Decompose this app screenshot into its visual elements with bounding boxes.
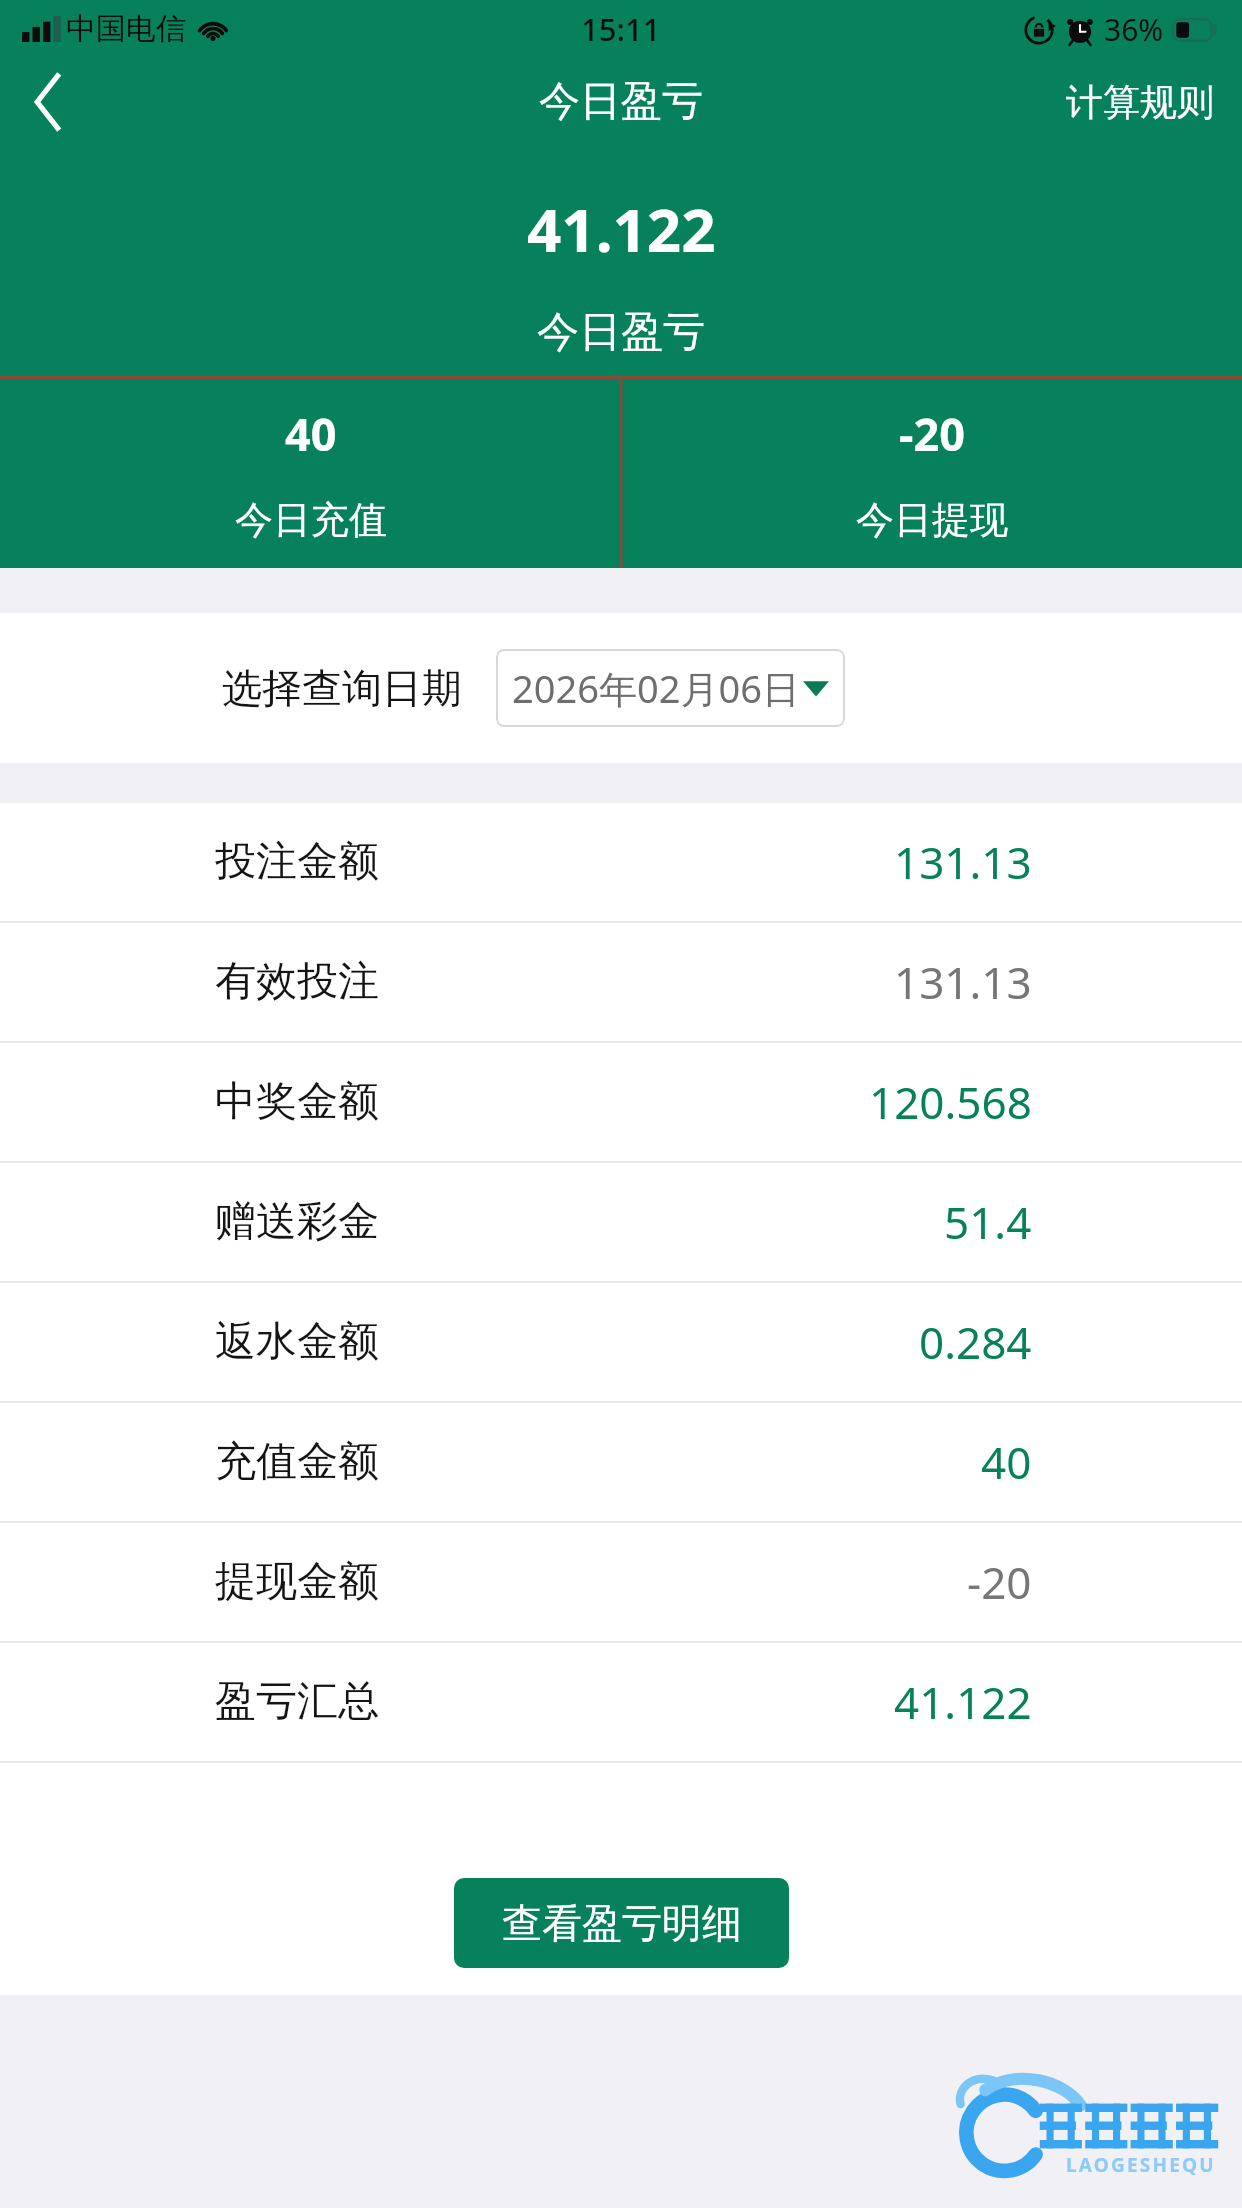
staticText: 36% [1104,9,1164,50]
staticText: 选择查询日期 [222,663,462,713]
staticText: 中奖金额 [215,1076,379,1128]
button[interactable]: 40 [0,376,621,568]
button[interactable]: 有效投注 [0,923,1242,1041]
staticText: 充值金额 [215,1436,379,1488]
button[interactable]: 返水金额 [0,1283,1242,1401]
staticText: -20 [899,403,965,464]
staticText: 有效投注 [215,956,379,1008]
staticText: 今日提现 [856,496,1008,544]
staticText: LAOGESHEQU [1066,2152,1216,2178]
staticText: -20 [967,1552,1032,1612]
staticText: 中国电信 [66,10,186,48]
button[interactable]: 中奖金额 [0,1043,1242,1161]
button[interactable]: 充值金额 [0,1403,1242,1521]
button[interactable]: 查看盈亏明细 [454,1878,789,1968]
button[interactable]: 投注金额 [0,803,1242,921]
staticText: 0.284 [919,1312,1032,1372]
staticText: 40 [981,1432,1032,1492]
staticText: 41.122 [894,1672,1032,1732]
staticText: 今日盈亏 [537,306,705,359]
button[interactable]: 2026年02月06日 [496,649,845,727]
button[interactable]: 盈亏汇总 [0,1643,1242,1761]
staticText: 查看盈亏明细 [502,1898,742,1948]
staticText: 投注金额 [215,836,379,888]
staticText: 赠送彩金 [215,1196,379,1248]
button[interactable]: -20 [621,376,1242,568]
staticText: 15:11 [581,8,661,50]
staticText: 40 [285,403,337,464]
button[interactable]: Back [0,58,96,146]
staticText: 今日充值 [235,496,387,544]
staticText: 盈亏汇总 [215,1676,379,1728]
staticText: 131.13 [894,952,1032,1012]
staticText: 131.13 [894,832,1032,892]
button[interactable]: 计算规则 [1038,58,1242,146]
staticText: 计算规则 [1066,79,1214,126]
staticText: 51.4 [944,1192,1032,1252]
staticText: 2026年02月06日 [512,662,800,714]
button[interactable]: 提现金额 [0,1523,1242,1641]
staticText: 提现金额 [215,1556,379,1608]
staticText: 返水金额 [215,1316,379,1368]
staticText: 今日盈亏 [539,76,703,128]
button[interactable]: 赠送彩金 [0,1163,1242,1281]
staticText: 120.568 [869,1072,1032,1132]
staticText: 41.122 [527,188,716,270]
